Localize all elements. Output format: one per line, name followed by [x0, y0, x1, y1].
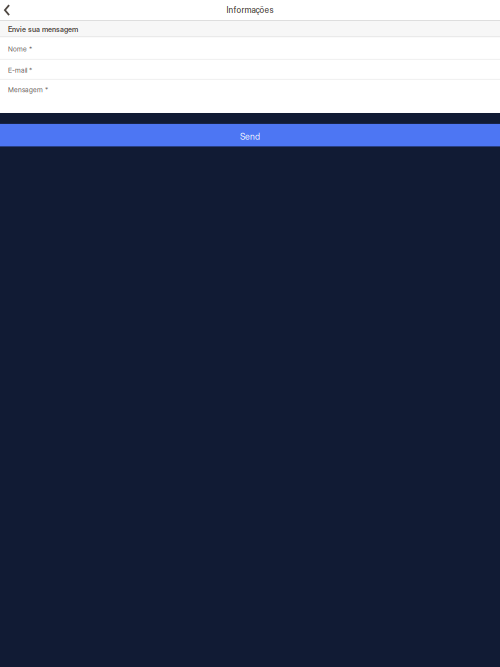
- button[interactable]: Back: [0, 0, 18, 20]
- button[interactable]: Mensagem *: [0, 80, 500, 113]
- staticText: E-mail *: [8, 66, 32, 74]
- staticText: Nome *: [8, 45, 32, 53]
- staticText: Informações: [226, 5, 273, 15]
- button[interactable]: Send: [0, 124, 500, 146]
- staticText: Send: [240, 131, 260, 142]
- staticText: Mensagem *: [8, 86, 48, 94]
- button[interactable]: Nome *: [0, 37, 500, 59]
- button[interactable]: E-mail *: [0, 60, 500, 79]
- staticText: Envie sua mensagem: [8, 25, 78, 34]
